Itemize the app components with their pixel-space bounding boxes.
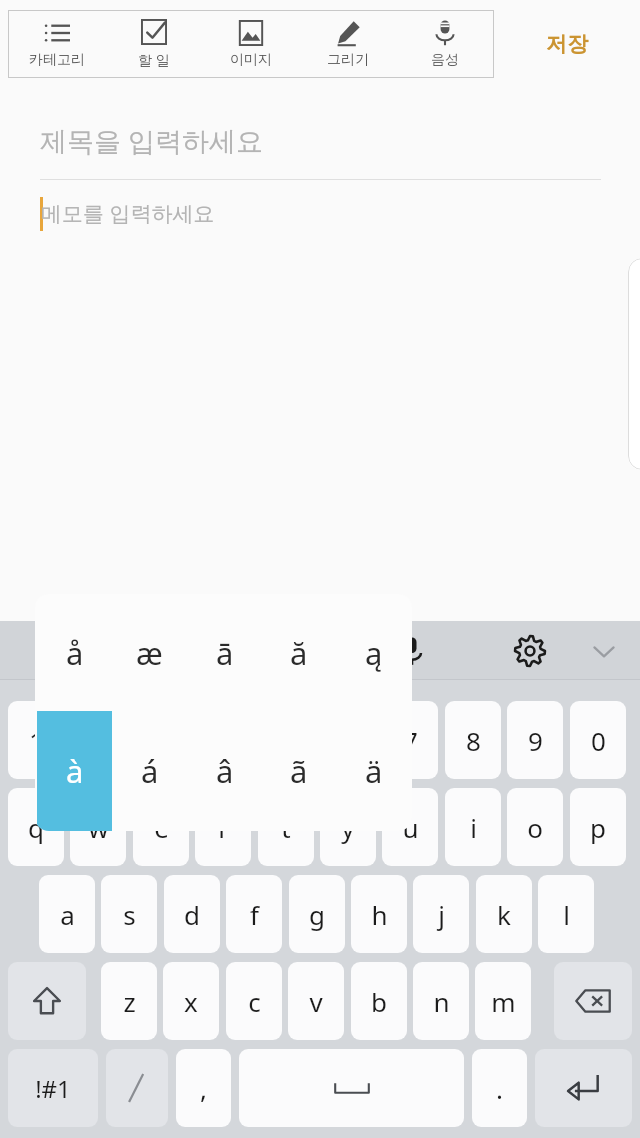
button[interactable]: n: [413, 962, 469, 1040]
button[interactable]: 이미지: [202, 10, 299, 78]
button[interactable]: j: [413, 875, 469, 953]
button[interactable]: 카테고리: [8, 10, 105, 78]
button[interactable]: e: [133, 788, 189, 866]
button[interactable]: ą: [336, 594, 411, 711]
staticText: ,: [200, 1071, 207, 1106]
button[interactable]: 1: [8, 701, 64, 779]
button[interactable]: .: [472, 1049, 527, 1127]
button[interactable]: u: [382, 788, 438, 866]
button[interactable]: 3: [133, 701, 189, 779]
button[interactable]: i: [445, 788, 501, 866]
button[interactable]: á: [112, 711, 187, 831]
button[interactable]: q: [8, 788, 64, 866]
button[interactable]: b: [351, 962, 407, 1040]
staticText: 이미지: [230, 51, 272, 69]
staticText: l: [563, 897, 570, 932]
button[interactable]: 2: [70, 701, 126, 779]
button[interactable]: 9: [507, 701, 563, 779]
button[interactable]: â: [187, 711, 262, 831]
button[interactable]: lang: [106, 1049, 168, 1127]
staticText: 저장: [546, 31, 588, 57]
button[interactable]: space: [239, 1049, 464, 1127]
staticText: 그리기: [327, 51, 369, 69]
staticText: 1: [29, 723, 44, 758]
staticText: c: [248, 984, 261, 1019]
button[interactable]: x: [163, 962, 219, 1040]
staticText: 9: [528, 723, 543, 758]
button[interactable]: p: [570, 788, 626, 866]
button[interactable]: t: [258, 788, 314, 866]
button[interactable]: del: [554, 962, 632, 1040]
button[interactable]: 7: [382, 701, 438, 779]
button[interactable]: 4: [195, 701, 251, 779]
button[interactable]: v: [288, 962, 344, 1040]
staticText: á: [141, 750, 159, 792]
button[interactable]: o: [507, 788, 563, 866]
button[interactable]: enter: [535, 1049, 632, 1127]
button[interactable]: m: [475, 962, 531, 1040]
button[interactable]: shift: [8, 962, 86, 1040]
staticText: n: [433, 984, 450, 1019]
staticText: y: [341, 810, 355, 845]
staticText: ä: [365, 750, 383, 792]
staticText: .: [496, 1071, 503, 1106]
staticText: m: [491, 984, 516, 1019]
button[interactable]: ä: [336, 711, 411, 831]
button[interactable]: 5: [258, 701, 314, 779]
button[interactable]: z: [101, 962, 157, 1040]
button[interactable]: y: [320, 788, 376, 866]
staticText: t: [281, 810, 291, 845]
staticText: 메모를 입력하세요: [41, 199, 215, 228]
button[interactable]: 6: [320, 701, 376, 779]
staticText: 할 일: [138, 50, 170, 69]
button[interactable]: a: [39, 875, 95, 953]
staticText: à: [66, 750, 84, 792]
button[interactable]: Voice input: [390, 629, 434, 673]
button[interactable]: f: [226, 875, 282, 953]
button[interactable]: s: [101, 875, 157, 953]
staticText: e: [154, 810, 169, 845]
staticText: f: [250, 897, 259, 932]
button[interactable]: 그리기: [299, 10, 396, 78]
staticText: d: [184, 897, 200, 932]
staticText: ă: [290, 632, 308, 674]
staticText: 카테고리: [29, 51, 85, 69]
button[interactable]: ă: [261, 594, 336, 711]
button[interactable]: 할 일: [105, 10, 202, 78]
staticText: p: [590, 810, 606, 845]
button[interactable]: Hide keyboard: [582, 629, 626, 673]
button[interactable]: Keyboard settings: [508, 629, 552, 673]
button[interactable]: ā: [187, 594, 262, 711]
staticText: k: [497, 897, 511, 932]
button[interactable]: 음성: [396, 10, 493, 78]
button[interactable]: k: [476, 875, 532, 953]
button[interactable]: 8: [445, 701, 501, 779]
staticText: å: [66, 632, 84, 674]
staticText: x: [184, 984, 198, 1019]
staticText: h: [371, 897, 388, 932]
button[interactable]: h: [351, 875, 407, 953]
button[interactable]: 0: [570, 701, 626, 779]
button[interactable]: à: [37, 711, 112, 831]
button[interactable]: 저장: [494, 10, 640, 78]
button[interactable]: r: [195, 788, 251, 866]
staticText: v: [309, 984, 323, 1019]
button[interactable]: l: [538, 875, 594, 953]
staticText: 8: [466, 723, 481, 758]
staticText: a: [60, 897, 75, 932]
button[interactable]: g: [289, 875, 345, 953]
button[interactable]: w: [70, 788, 126, 866]
button[interactable]: æ: [112, 594, 187, 711]
button[interactable]: ,: [176, 1049, 231, 1127]
button[interactable]: c: [226, 962, 282, 1040]
button[interactable]: d: [164, 875, 220, 953]
button[interactable]: å: [37, 594, 112, 711]
staticText: w: [88, 810, 109, 845]
staticText: u: [402, 810, 419, 845]
button[interactable]: ã: [261, 711, 336, 831]
button[interactable]: !#1: [8, 1049, 98, 1127]
